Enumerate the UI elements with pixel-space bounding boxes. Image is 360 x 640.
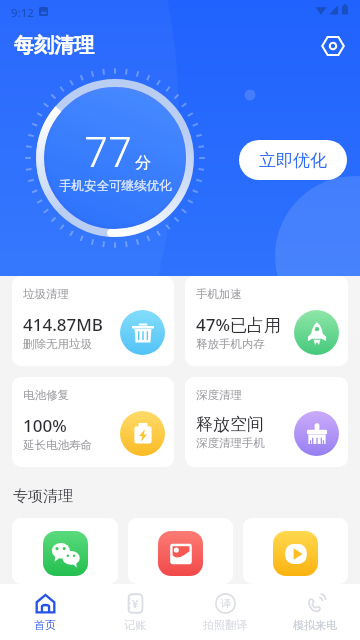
staticText: 深度清理手机: [196, 436, 265, 450]
staticText: 译: [221, 597, 231, 610]
staticText: 100%: [23, 414, 67, 437]
staticText: 记账: [124, 618, 146, 632]
button[interactable]: Settings: [320, 33, 346, 59]
button[interactable]: 电池修复: [12, 377, 174, 467]
staticText: 释放手机内存: [196, 337, 265, 351]
button[interactable]: 垃圾清理: [12, 276, 174, 366]
staticText: 立即优化: [259, 150, 327, 171]
button[interactable]: ¥: [90, 584, 180, 640]
staticText: 每刻清理: [14, 33, 94, 58]
button[interactable]: 首页: [0, 584, 90, 640]
staticText: 414.87MB: [23, 313, 103, 336]
staticText: 分: [135, 153, 151, 173]
button[interactable]: [12, 518, 118, 584]
staticText: 垃圾清理: [23, 287, 69, 301]
staticText: 47%已占用: [196, 313, 281, 336]
staticText: 手机加速: [196, 287, 242, 301]
staticText: 延长电池寿命: [23, 438, 92, 452]
staticText: ¥: [132, 596, 139, 611]
staticText: 释放空间: [196, 414, 264, 435]
staticText: 手机安全可继续优化: [59, 178, 172, 194]
button[interactable]: 立即优化: [239, 140, 347, 180]
button[interactable]: 手机加速: [185, 276, 348, 366]
staticText: 首页: [34, 618, 56, 632]
staticText: 9:12: [11, 5, 34, 21]
staticText: 拍照翻译: [203, 618, 247, 632]
staticText: 专项清理: [13, 487, 73, 506]
staticText: 深度清理: [196, 388, 242, 402]
button[interactable]: 模拟来电: [270, 584, 360, 640]
button[interactable]: 译: [180, 584, 270, 640]
staticText: 模拟来电: [293, 618, 337, 632]
button[interactable]: 深度清理: [185, 377, 348, 467]
button[interactable]: [128, 518, 233, 584]
staticText: 电池修复: [23, 388, 69, 402]
button[interactable]: [243, 518, 348, 584]
staticText: 77: [84, 122, 132, 179]
staticText: 删除无用垃圾: [23, 337, 92, 351]
